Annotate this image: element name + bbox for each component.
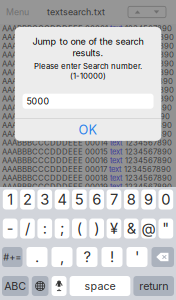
button[interactable]: #+=: [2, 247, 22, 267]
staticText: 1234567890: [123, 173, 172, 183]
staticText: ¥: [110, 220, 118, 237]
staticText: -: [7, 220, 14, 237]
staticText: text: [108, 112, 121, 121]
button[interactable]: ABC: [2, 276, 29, 296]
staticText: 9: [144, 191, 153, 208]
button[interactable]: !: [101, 247, 122, 267]
staticText: 2: [23, 191, 32, 208]
button[interactable]: 1: [3, 189, 17, 209]
staticText: ": [162, 220, 169, 237]
staticText: text: [110, 173, 123, 183]
staticText: 7: [110, 191, 118, 208]
staticText: AAABBBCCCDDDEEE 00001: [2, 24, 110, 33]
staticText: .: [35, 248, 39, 266]
staticText: AAABBBCCCDDDEEE 00018: [2, 173, 110, 183]
staticText: ,: [60, 248, 64, 266]
button[interactable]: -: [3, 218, 17, 238]
staticText: AAABBBCCCDDDEEE 00014: [2, 138, 110, 147]
button[interactable]: ¥: [107, 218, 121, 238]
button[interactable]: ): [89, 218, 104, 238]
staticText: 1234567890: [123, 129, 172, 139]
staticText: AAABBBCCCDDDEEE 00016: [2, 156, 110, 165]
staticText: AAABBBCCCDDDEEE 00007: [2, 76, 111, 86]
button[interactable]: &: [124, 218, 139, 238]
button[interactable]: 0: [158, 189, 173, 209]
staticText: 5000: [27, 96, 50, 106]
staticText: 1234567890: [122, 164, 171, 174]
button[interactable]: /: [20, 218, 35, 238]
staticText: text: [110, 103, 123, 112]
staticText: 1234567890: [123, 156, 172, 165]
button[interactable]: ,: [51, 247, 72, 267]
staticText: results.: [72, 47, 103, 58]
staticText: AAABBBCCCDDDEEE 00019: [2, 182, 110, 191]
staticText: 1234567890: [125, 50, 174, 59]
staticText: AAABBBCCCDDDEEE 00010: [2, 103, 110, 112]
staticText: 1234567890: [125, 32, 174, 42]
button[interactable]: Delete: [151, 247, 174, 267]
button[interactable]: return: [133, 276, 174, 296]
staticText: 8: [127, 191, 136, 208]
staticText: ABC: [4, 279, 26, 292]
staticText: (: [77, 220, 82, 237]
button[interactable]: 9: [141, 189, 156, 209]
staticText: text: [110, 156, 123, 165]
button[interactable]: Previous match: [128, 6, 147, 18]
button[interactable]: Switch keyboard: [32, 276, 48, 296]
button[interactable]: 2: [20, 189, 35, 209]
staticText: text: [110, 147, 123, 156]
staticText: text: [112, 41, 125, 51]
staticText: 1234567890: [125, 68, 174, 77]
staticText: 1234567890: [123, 103, 172, 112]
staticText: ': [135, 248, 139, 266]
staticText: 1234567890: [125, 41, 174, 51]
staticText: text: [112, 85, 125, 95]
staticText: text: [112, 68, 125, 77]
button[interactable]: Dictate: [51, 276, 66, 296]
staticText: 1: [7, 191, 13, 208]
staticText: 6: [92, 191, 101, 208]
staticText: :: [43, 220, 47, 237]
staticText: text: [110, 138, 123, 147]
staticText: space: [84, 279, 115, 292]
staticText: OK: [78, 122, 97, 138]
button[interactable]: space: [70, 276, 130, 296]
staticText: 5: [75, 191, 84, 208]
staticText: Please enter Search number.: [34, 61, 142, 71]
staticText: 1234567890: [125, 59, 174, 68]
staticText: textsearch.txt: [47, 7, 105, 17]
staticText: AAABBBCCCDDDEEE 00004: [2, 50, 112, 59]
staticText: text: [110, 24, 123, 33]
staticText: 1234567890: [123, 138, 172, 147]
button[interactable]: 3: [37, 189, 52, 209]
staticText: ): [94, 220, 99, 237]
button[interactable]: ?: [76, 247, 97, 267]
staticText: 1234567890: [123, 120, 172, 130]
button[interactable]: OK: [15, 119, 161, 141]
button[interactable]: 4: [55, 189, 69, 209]
button[interactable]: 8: [124, 189, 139, 209]
button[interactable]: .: [26, 247, 47, 267]
button[interactable]: (: [72, 218, 87, 238]
button[interactable]: Menu: [0, 0, 40, 24]
button[interactable]: ': [126, 247, 147, 267]
staticText: AAABBBCCCDDDEEE 00008: [2, 85, 112, 95]
button[interactable]: ": [158, 218, 173, 238]
staticText: Menu: [6, 7, 29, 17]
staticText: 1234567890: [125, 94, 174, 103]
staticText: text: [110, 182, 123, 191]
staticText: 0: [161, 191, 170, 208]
staticText: !: [110, 248, 114, 266]
button[interactable]: @: [141, 218, 156, 238]
button[interactable]: ;: [55, 218, 69, 238]
staticText: AAABBBCCCDDDEEE 00011: [2, 112, 108, 121]
button[interactable]: :: [37, 218, 52, 238]
button[interactable]: Next match: [147, 6, 166, 18]
button[interactable]: 7: [107, 189, 121, 209]
button[interactable]: 5: [72, 189, 87, 209]
button[interactable]: 6: [89, 189, 104, 209]
staticText: ;: [60, 220, 64, 237]
staticText: 1234567890: [121, 112, 170, 121]
